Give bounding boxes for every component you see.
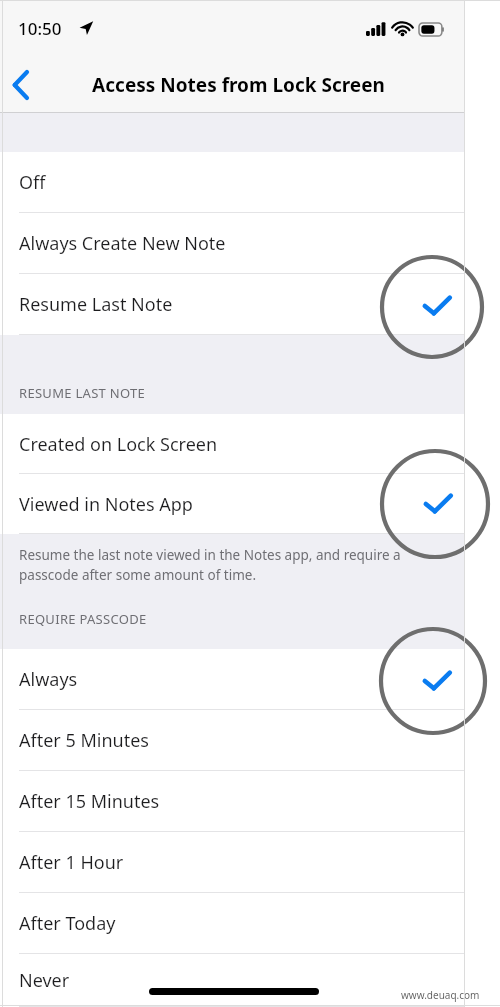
staticText: 10:50 xyxy=(18,17,62,40)
button[interactable]: Back xyxy=(0,61,48,109)
button[interactable]: Off xyxy=(0,152,465,213)
button[interactable]: Selected xyxy=(422,491,454,517)
staticText: Off xyxy=(19,170,46,195)
staticText: Always xyxy=(19,667,78,692)
staticText: REQUIRE PASSCODE xyxy=(19,610,147,628)
staticText: Resume Last Note xyxy=(19,292,173,317)
staticText: Access Notes from Lock Screen xyxy=(92,72,385,98)
button[interactable]: Created on Lock Screen xyxy=(0,414,465,474)
button[interactable]: After Today xyxy=(0,893,465,954)
button[interactable]: Selected xyxy=(421,668,453,694)
staticText: Viewed in Notes App xyxy=(19,492,193,517)
staticText: After 15 Minutes xyxy=(19,789,160,814)
button[interactable]: After 15 Minutes xyxy=(0,771,465,832)
button[interactable]: Viewed in Notes App xyxy=(0,474,465,534)
button[interactable]: Resume Last Note xyxy=(0,274,465,335)
button[interactable]: After 1 Hour xyxy=(0,832,465,893)
staticText: After 1 Hour xyxy=(19,850,124,875)
staticText: Always Create New Note xyxy=(19,231,226,256)
button[interactable]: Always xyxy=(0,649,465,710)
staticText: www.deuaq.com xyxy=(401,988,480,1002)
staticText: Resume the last note viewed in the Notes… xyxy=(19,546,441,584)
staticText: RESUME LAST NOTE xyxy=(19,384,146,402)
staticText: After 5 Minutes xyxy=(19,728,149,753)
button[interactable]: Selected xyxy=(421,293,453,319)
button[interactable]: After 5 Minutes xyxy=(0,710,465,771)
staticText: After Today xyxy=(19,911,116,936)
staticText: Never xyxy=(19,968,70,993)
button[interactable]: Never xyxy=(0,954,465,1007)
button[interactable]: Always Create New Note xyxy=(0,213,465,274)
staticText: Created on Lock Screen xyxy=(19,432,218,457)
